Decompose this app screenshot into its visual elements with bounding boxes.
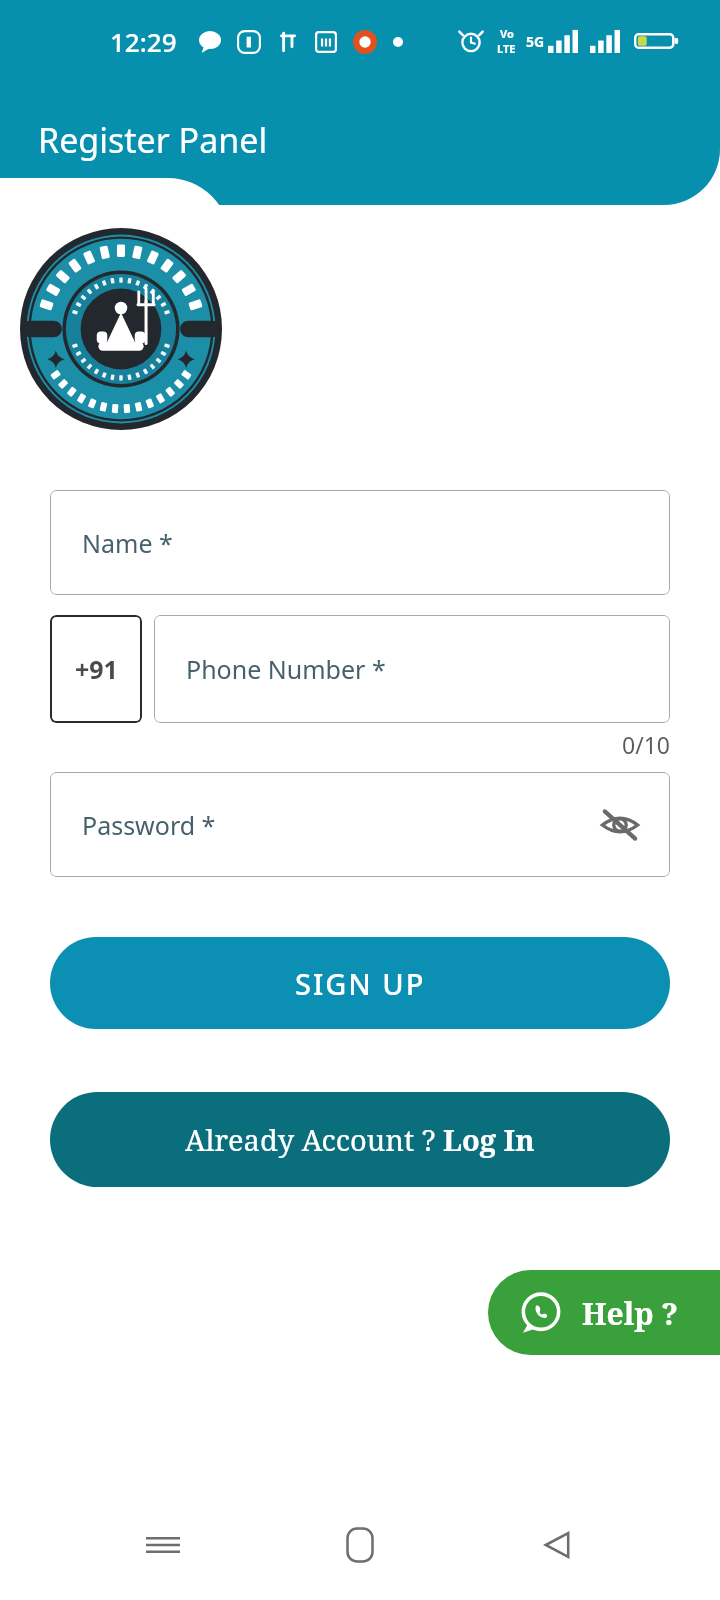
button[interactable]: Show password xyxy=(598,803,642,847)
button[interactable]: Name * xyxy=(50,490,670,595)
button[interactable]: Help ? xyxy=(488,1270,720,1355)
staticText: Log In xyxy=(443,1120,535,1159)
button[interactable]: Back xyxy=(523,1510,593,1580)
staticText: Phone Number * xyxy=(186,652,386,686)
staticText: Vo xyxy=(500,26,514,41)
staticText: Register Panel xyxy=(38,117,268,163)
staticText: LTE xyxy=(497,41,516,56)
staticText: 12:29 xyxy=(110,24,177,59)
button[interactable]: Home xyxy=(325,1510,395,1580)
button[interactable]: Password * xyxy=(50,772,670,877)
button[interactable]: Phone Number * xyxy=(154,615,670,723)
button[interactable]: Already Account ? xyxy=(50,1092,670,1187)
button[interactable]: Recent apps xyxy=(128,1510,198,1580)
staticText: Help ? xyxy=(582,1293,678,1334)
staticText: Already Account ? xyxy=(185,1120,443,1159)
staticText: 5G xyxy=(526,32,545,51)
staticText: Name * xyxy=(82,526,173,560)
staticText: Password * xyxy=(82,808,216,842)
staticText: 0/10 xyxy=(50,729,670,760)
staticText: SIGN UP xyxy=(295,964,426,1003)
staticText: +91 xyxy=(75,652,118,686)
button[interactable]: SIGN UP xyxy=(50,937,670,1029)
button[interactable]: +91 xyxy=(50,615,142,723)
